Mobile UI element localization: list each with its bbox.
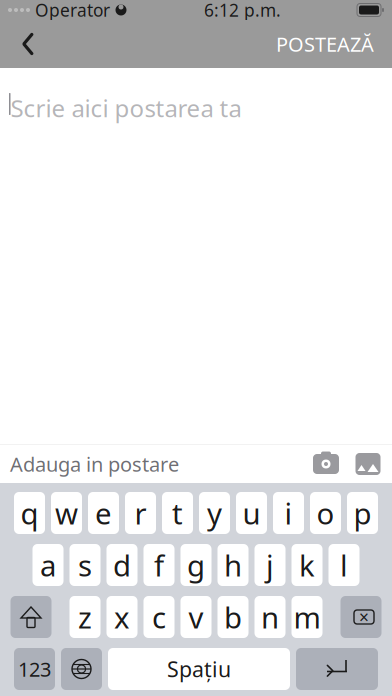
button[interactable]: s: [69, 544, 100, 586]
button[interactable]: f: [143, 544, 174, 586]
staticText: Spațiu: [167, 655, 231, 683]
staticText: u: [242, 493, 260, 532]
button[interactable]: b: [217, 596, 248, 638]
button[interactable]: Camera: [312, 451, 340, 477]
button[interactable]: e: [88, 492, 119, 534]
staticText: Operator: [35, 0, 110, 21]
button[interactable]: h: [217, 544, 248, 586]
button[interactable]: y: [199, 492, 230, 534]
button[interactable]: k: [291, 544, 322, 586]
button[interactable]: Shift: [10, 596, 51, 638]
button[interactable]: l: [328, 544, 359, 586]
button[interactable]: o: [310, 492, 341, 534]
staticText: r: [134, 493, 146, 532]
staticText: z: [78, 597, 92, 636]
staticText: c: [152, 597, 166, 636]
button[interactable]: i: [273, 492, 304, 534]
button[interactable]: a: [32, 544, 63, 586]
button[interactable]: r: [125, 492, 156, 534]
staticText: p: [353, 493, 371, 532]
button[interactable]: Photo Library: [354, 451, 382, 477]
staticText: o: [316, 493, 334, 532]
button[interactable]: m: [291, 596, 322, 638]
staticText: i: [284, 493, 292, 532]
button[interactable]: w: [51, 492, 82, 534]
button[interactable]: Next keyboard: [61, 648, 102, 690]
staticText: g: [187, 545, 205, 584]
staticText: v: [188, 597, 203, 636]
button[interactable]: n: [254, 596, 285, 638]
button[interactable]: q: [14, 492, 45, 534]
staticText: h: [224, 545, 242, 584]
staticText: POSTEAZĂ: [276, 31, 374, 57]
button[interactable]: z: [69, 596, 100, 638]
staticText: 6:12 p.m.: [204, 0, 281, 21]
staticText: q: [20, 493, 38, 532]
button[interactable]: g: [180, 544, 211, 586]
button[interactable]: c: [143, 596, 174, 638]
staticText: n: [261, 597, 279, 636]
staticText: s: [78, 545, 92, 584]
staticText: a: [40, 545, 56, 584]
staticText: t: [172, 493, 183, 532]
staticText: x: [114, 597, 130, 636]
staticText: j: [266, 545, 274, 584]
staticText: Adauga in postare: [10, 451, 179, 477]
staticText: e: [95, 493, 112, 532]
button[interactable]: 123: [14, 648, 55, 690]
staticText: k: [299, 545, 315, 584]
staticText: l: [340, 545, 348, 584]
staticText: d: [113, 545, 131, 584]
button[interactable]: x: [106, 596, 137, 638]
button[interactable]: d: [106, 544, 137, 586]
button[interactable]: Return: [296, 648, 378, 690]
button[interactable]: Delete: [340, 596, 381, 638]
button[interactable]: POSTEAZĂ: [262, 22, 388, 66]
staticText: f: [154, 545, 164, 584]
staticText: 123: [18, 656, 51, 682]
button[interactable]: u: [236, 492, 267, 534]
staticText: w: [55, 493, 78, 532]
button[interactable]: j: [254, 544, 285, 586]
button[interactable]: v: [180, 596, 211, 638]
staticText: b: [224, 597, 242, 636]
staticText: m: [293, 597, 320, 636]
button[interactable]: Back: [6, 22, 50, 66]
staticText: y: [207, 493, 222, 532]
button[interactable]: t: [162, 492, 193, 534]
button[interactable]: p: [347, 492, 378, 534]
staticText: Scrie aici postarea ta: [10, 92, 241, 124]
button[interactable]: Spațiu: [108, 648, 290, 690]
staticText: ×: [359, 605, 369, 628]
